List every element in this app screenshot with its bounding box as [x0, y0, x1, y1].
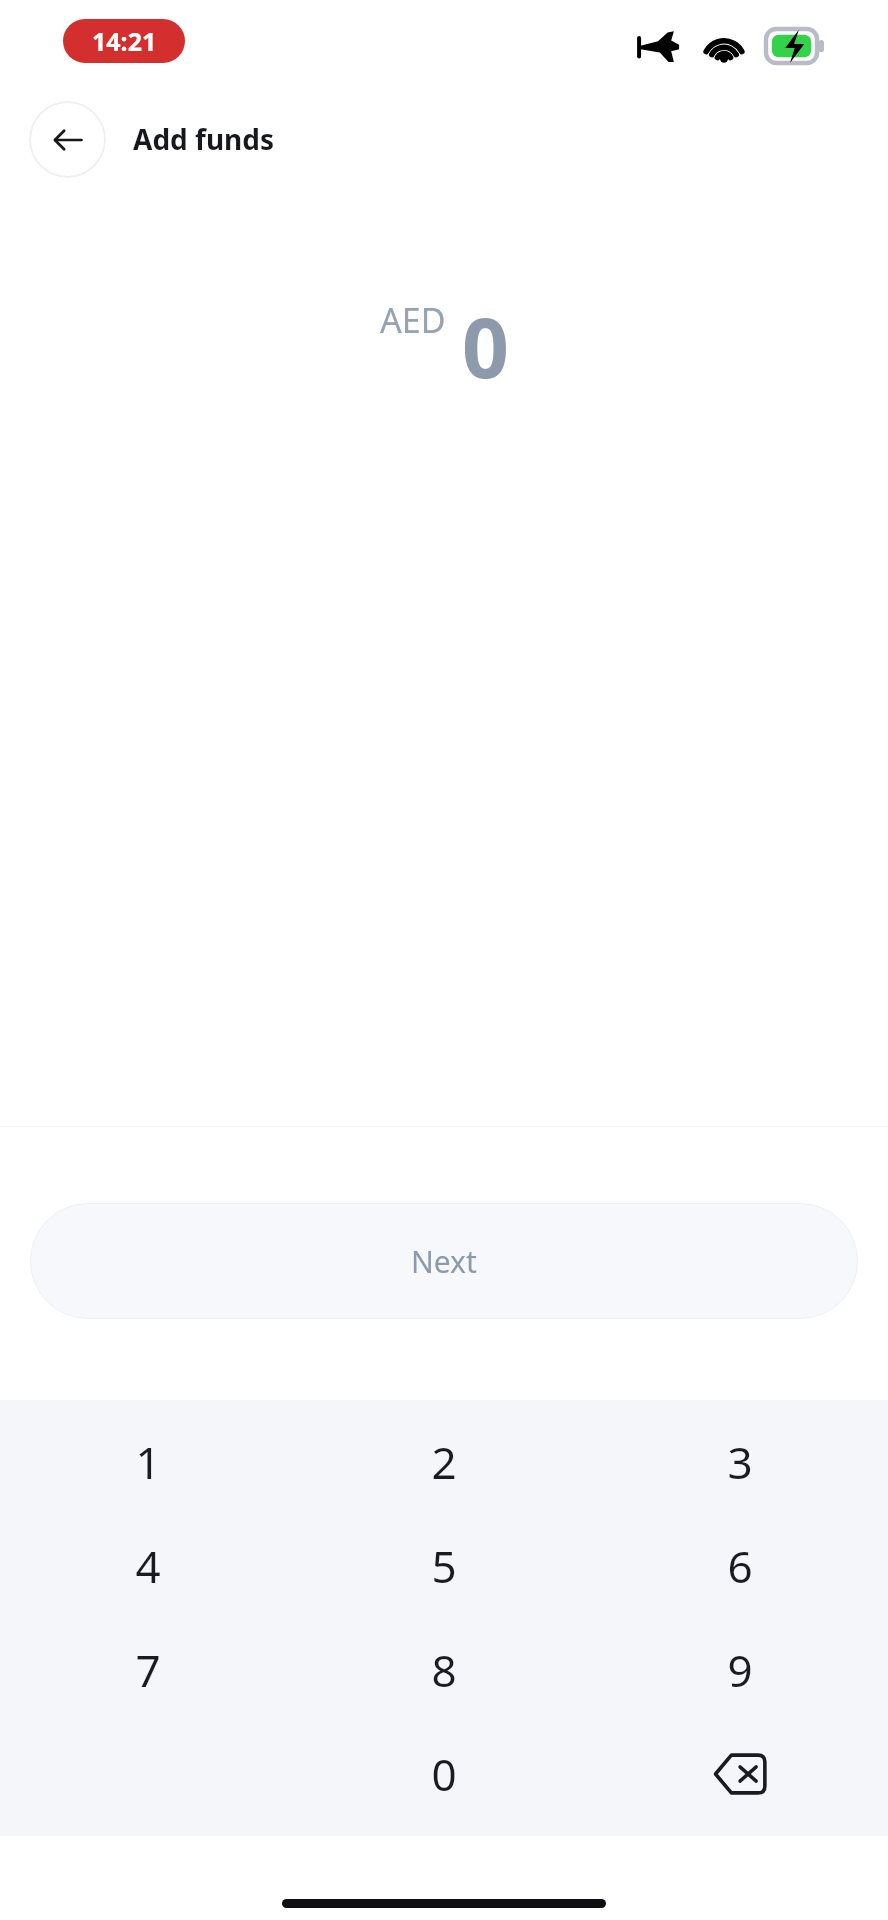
button[interactable]: 7: [0, 1618, 296, 1722]
staticText: 7: [135, 1640, 161, 1700]
staticText: 5: [431, 1536, 457, 1596]
staticText: 6: [727, 1536, 753, 1596]
staticText: Next: [411, 1241, 477, 1282]
button[interactable]: 5: [296, 1514, 592, 1618]
staticText: 2: [431, 1432, 457, 1492]
staticText: 0: [462, 290, 509, 402]
button[interactable]: 4: [0, 1514, 296, 1618]
button[interactable]: 2: [296, 1410, 592, 1514]
button[interactable]: Next: [30, 1203, 858, 1319]
staticText: Add funds: [133, 120, 275, 158]
staticText: 4: [135, 1536, 161, 1596]
staticText: AED: [380, 297, 446, 343]
staticText: 8: [431, 1640, 457, 1700]
staticText: 14:21: [92, 24, 157, 58]
staticText: 9: [727, 1640, 753, 1700]
button[interactable]: 0: [296, 1722, 592, 1826]
button[interactable]: 3: [592, 1410, 888, 1514]
button[interactable]: 8: [296, 1618, 592, 1722]
button[interactable]: 6: [592, 1514, 888, 1618]
button[interactable]: Back: [29, 101, 106, 178]
button[interactable]: 1: [0, 1410, 296, 1514]
staticText: 3: [727, 1432, 753, 1492]
button[interactable]: 9: [592, 1618, 888, 1722]
staticText: 1: [135, 1432, 161, 1492]
button[interactable]: Backspace: [592, 1722, 888, 1826]
staticText: 0: [431, 1744, 457, 1804]
